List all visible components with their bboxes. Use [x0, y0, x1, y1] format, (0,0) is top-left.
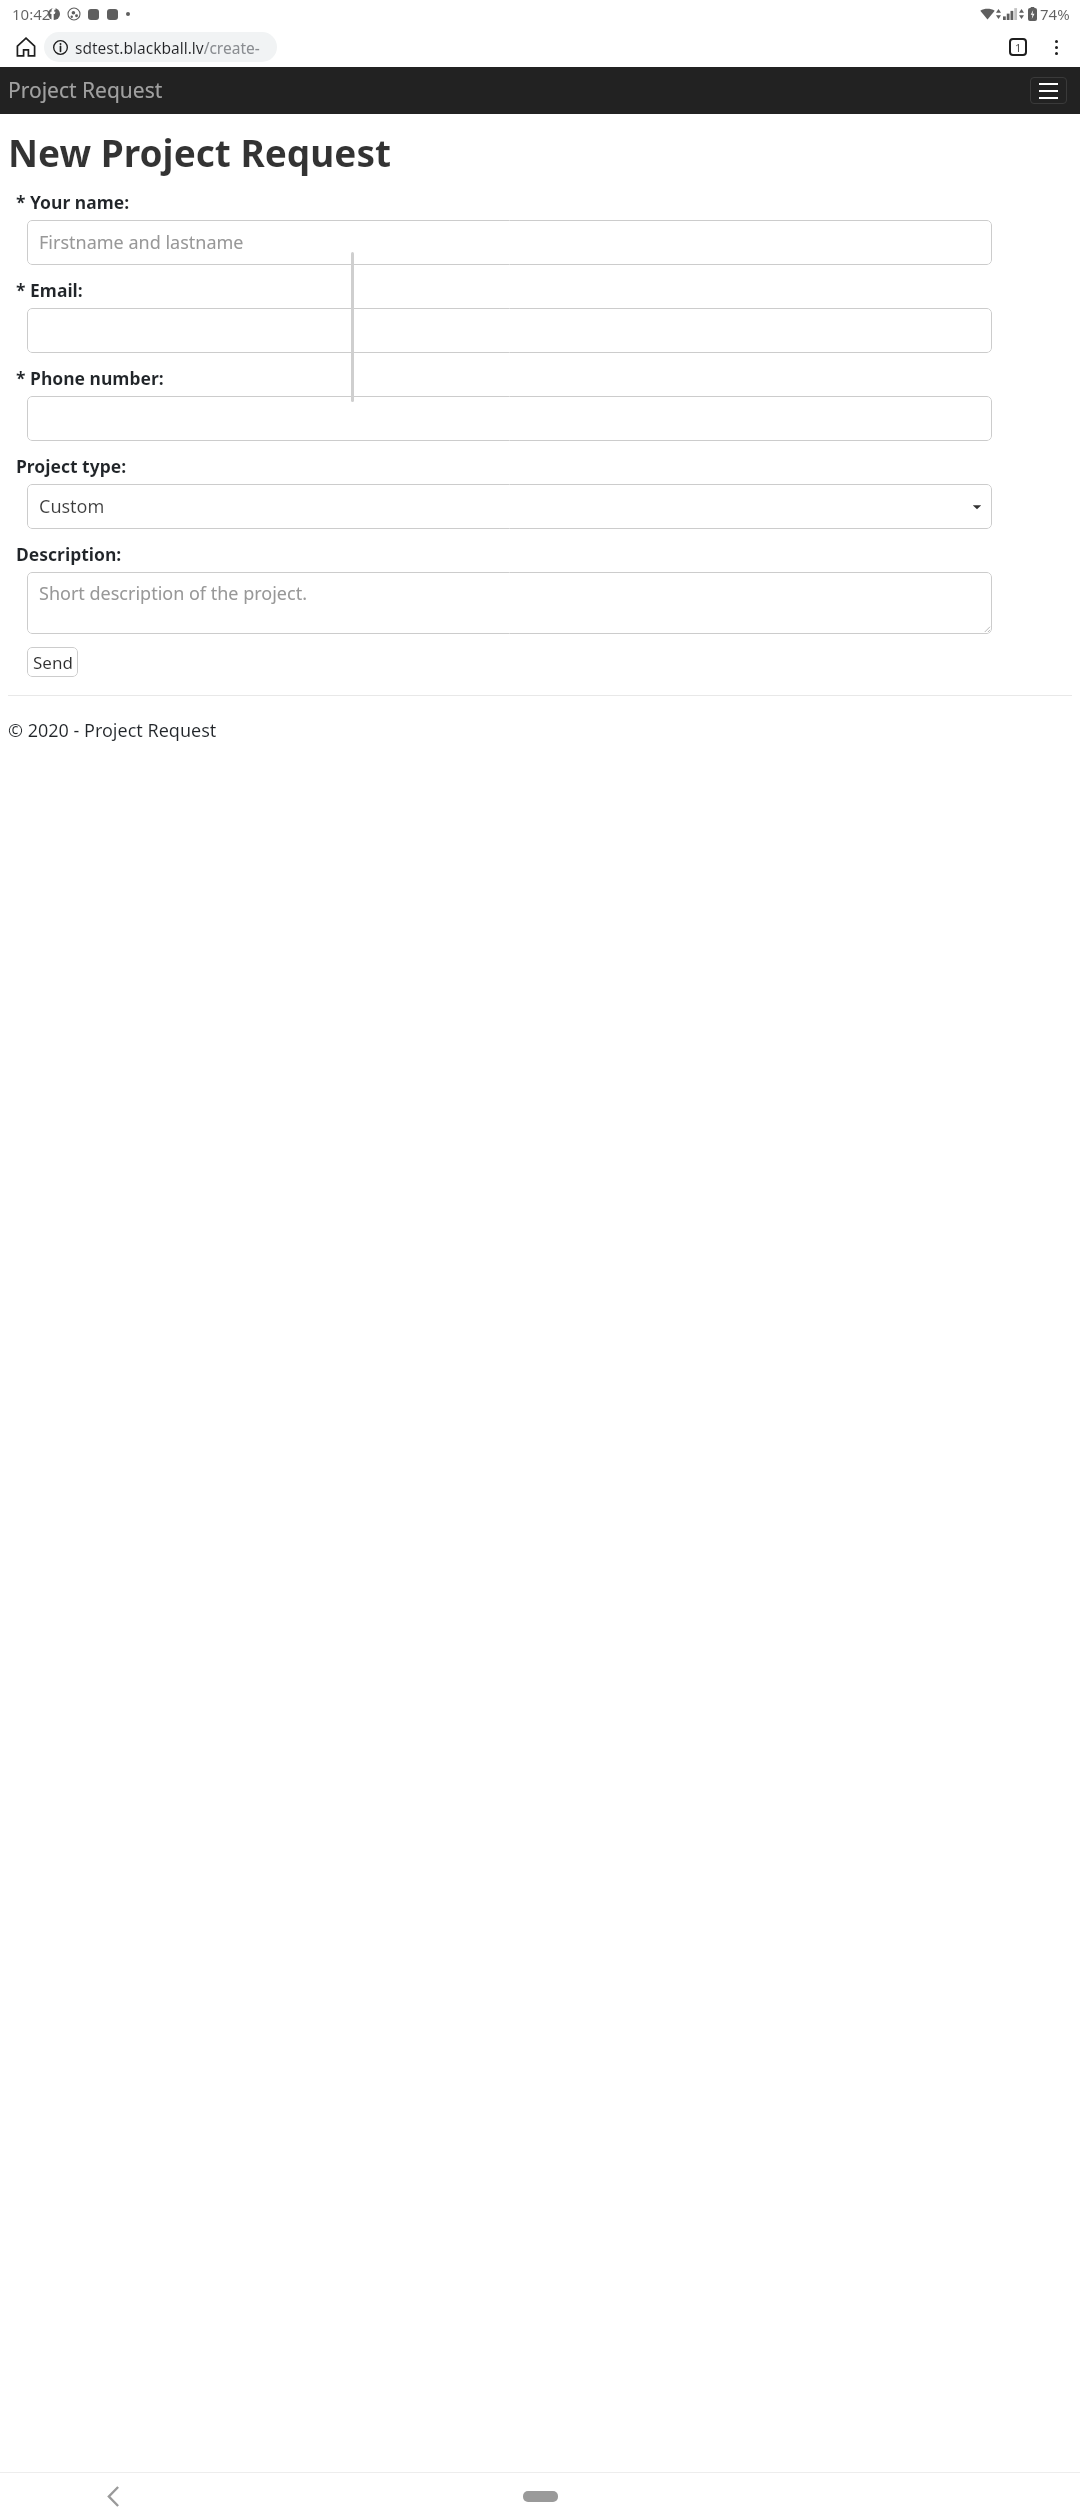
staticText: © 2020 - Project Request — [8, 718, 217, 743]
button[interactable]: Home — [523, 2491, 558, 2502]
button[interactable]: More options — [1040, 31, 1072, 63]
button[interactable] — [27, 396, 992, 441]
button[interactable] — [27, 308, 992, 353]
staticText: * Email: — [16, 278, 83, 302]
staticText: Description: — [16, 542, 122, 566]
button[interactable]: Tabs — [1002, 31, 1034, 63]
staticText: * Phone number: — [16, 366, 164, 390]
button[interactable]: Short description of the project. — [27, 572, 992, 634]
button[interactable]: Home — [8, 29, 44, 65]
staticText: Custom — [39, 494, 105, 519]
button[interactable]: Firstname and lastname — [27, 220, 992, 265]
staticText: Project Request — [8, 76, 163, 105]
staticText: Short description of the project. — [39, 581, 307, 606]
button[interactable]: sdtest.blackball.lv/create-requ — [44, 32, 277, 62]
staticText: Firstname and lastname — [39, 230, 244, 255]
staticText: Send — [33, 651, 73, 674]
staticText: 1 — [1015, 40, 1022, 55]
staticText: sdtest.blackball.lv/create-requ — [75, 37, 277, 58]
button[interactable]: Back — [96, 2479, 130, 2513]
button[interactable]: Send — [27, 647, 78, 677]
staticText: 74% — [1040, 4, 1070, 24]
button[interactable]: Custom — [27, 484, 992, 529]
button[interactable]: Menu — [1030, 77, 1067, 104]
staticText: * Your name: — [16, 190, 130, 214]
staticText: Project type: — [16, 454, 127, 478]
staticText: New Project Request — [8, 127, 392, 177]
staticText: 10:42 — [12, 4, 51, 24]
